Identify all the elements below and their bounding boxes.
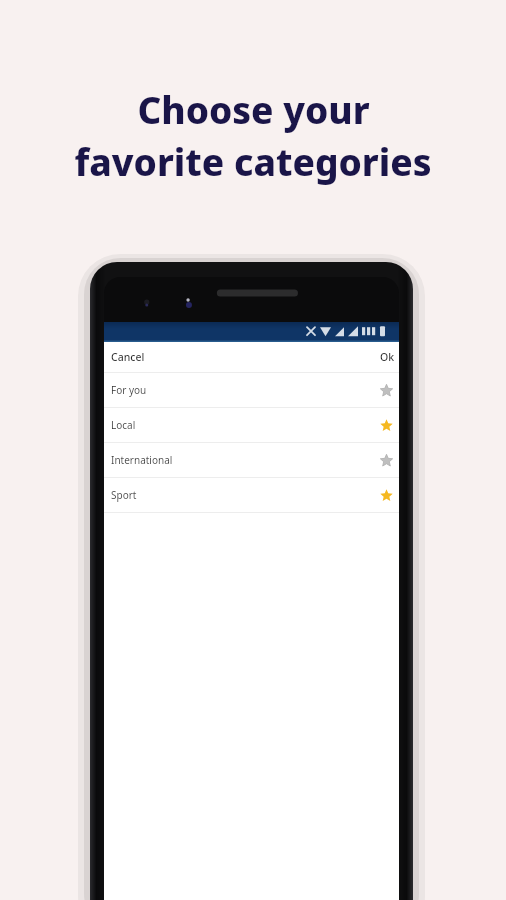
button[interactable]: Add For you to favorites xyxy=(375,379,397,401)
button[interactable]: International xyxy=(104,443,399,477)
button[interactable]: Sport xyxy=(104,478,399,512)
button[interactable]: Cancel xyxy=(107,345,149,369)
staticText: Ok xyxy=(380,350,395,364)
button[interactable]: Remove Sport from favorites xyxy=(375,484,397,506)
button[interactable]: Local xyxy=(104,408,399,442)
button[interactable]: Add International to favorites xyxy=(375,449,397,471)
staticText: Cancel xyxy=(111,350,145,364)
staticText: Sport xyxy=(111,488,137,502)
staticText: Local xyxy=(111,418,136,432)
staticText: Choose your xyxy=(137,84,370,134)
button[interactable]: For you xyxy=(104,373,399,407)
button[interactable]: Remove Local from favorites xyxy=(375,414,397,436)
button[interactable]: Ok xyxy=(376,345,399,369)
staticText: favorite categories xyxy=(74,136,432,186)
staticText: International xyxy=(111,453,173,467)
staticText: For you xyxy=(111,383,147,397)
